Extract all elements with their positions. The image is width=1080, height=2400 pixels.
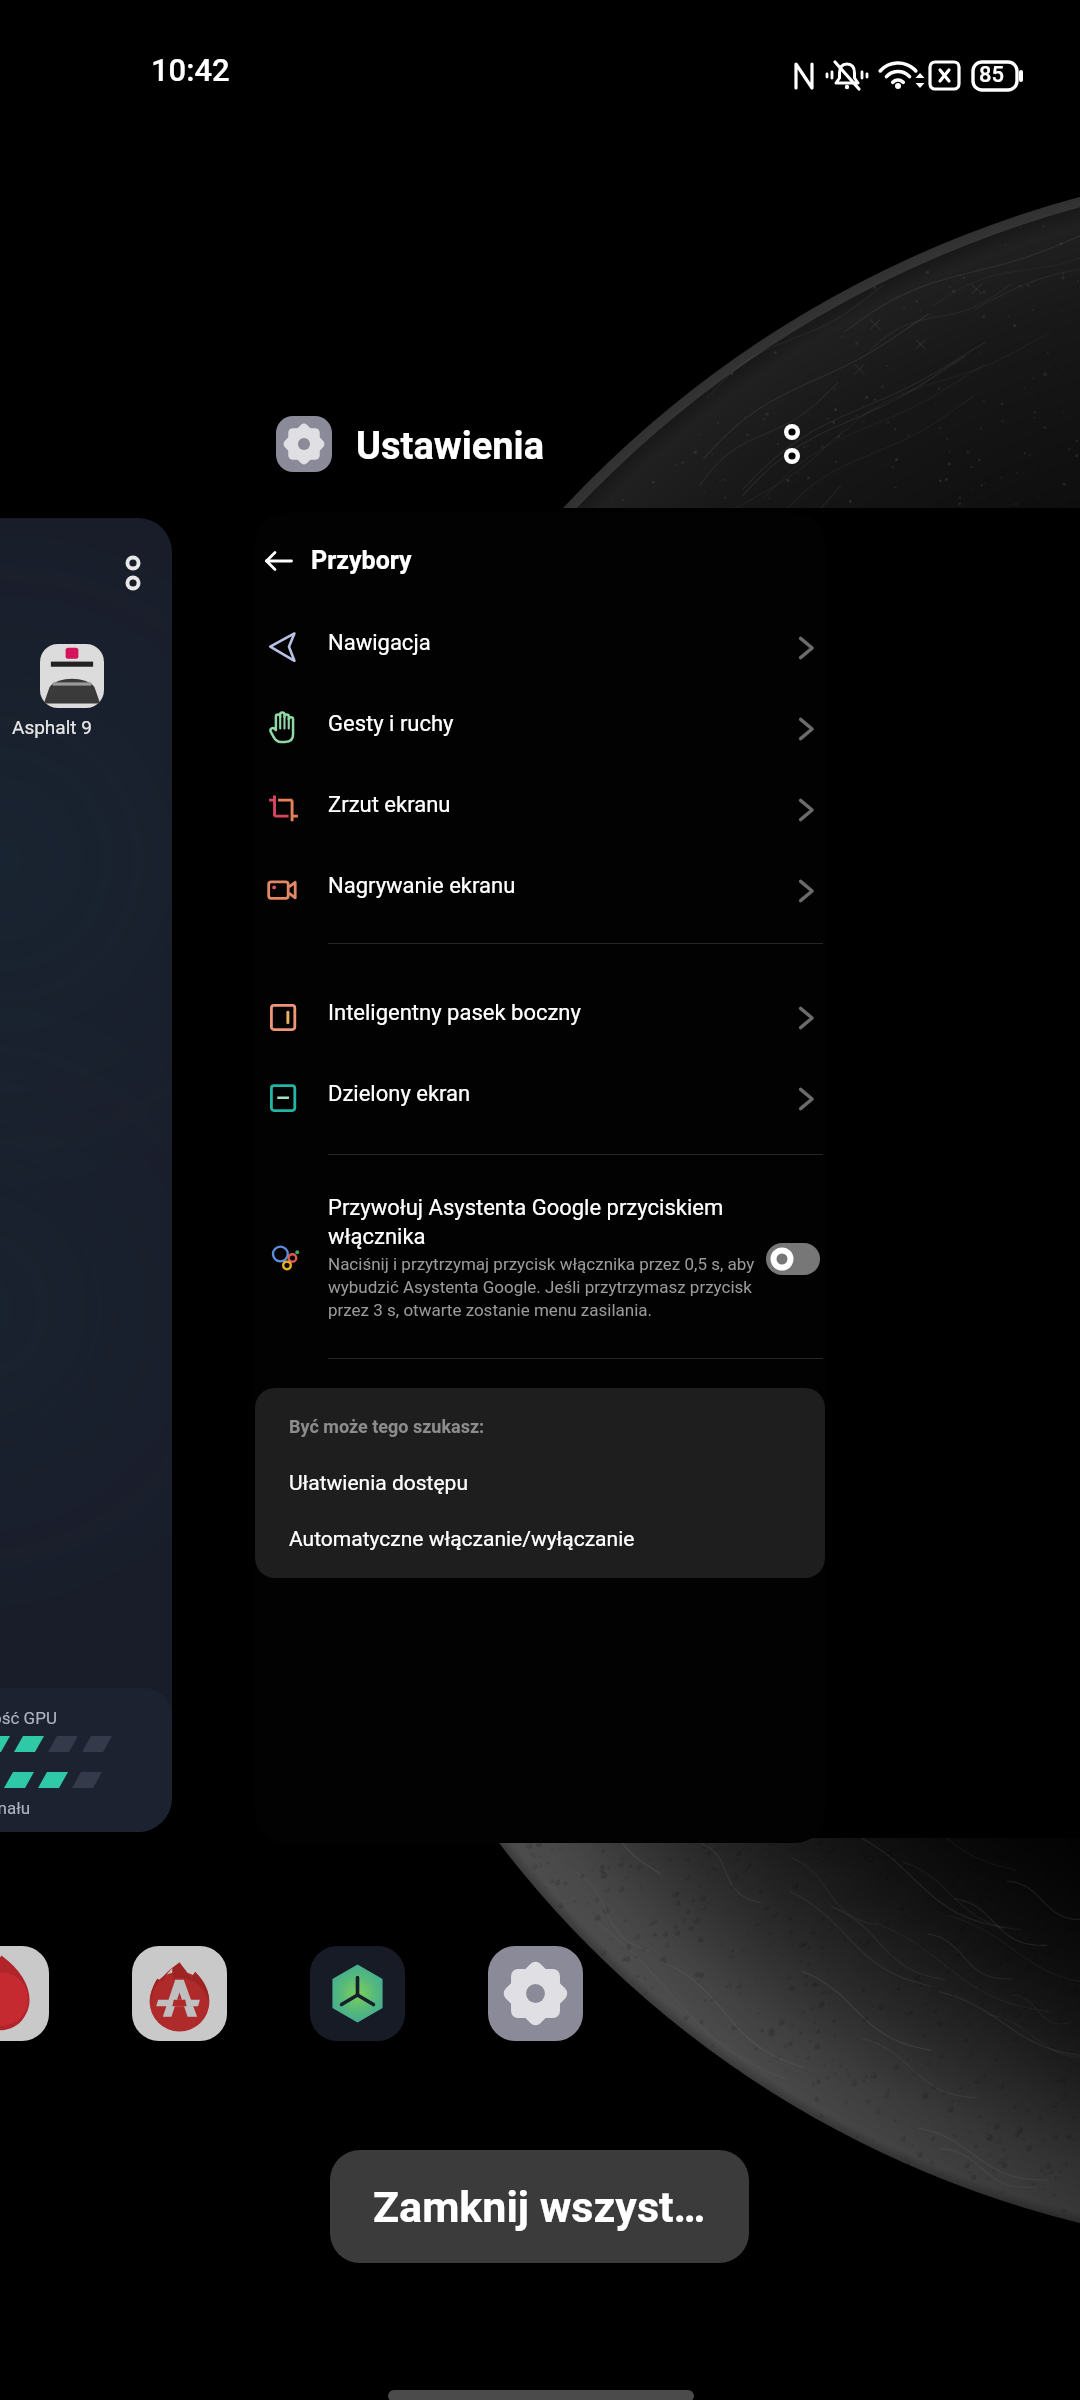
button[interactable]: More options	[764, 416, 820, 472]
button[interactable]: Asphalt 9	[0, 518, 172, 1832]
button[interactable]: Dzielony ekran	[255, 1058, 825, 1139]
button[interactable]: Zamknij wszyst…	[330, 2150, 749, 2263]
button[interactable]: Open app	[0, 1946, 49, 2041]
button[interactable]: Open app	[310, 1946, 405, 2041]
button[interactable]: Gesty i ruchy	[255, 688, 825, 769]
staticText: Zamknij wszyst…	[373, 2182, 706, 2232]
button[interactable]: Nagrywanie ekranu	[255, 850, 825, 931]
button[interactable]: Automatyczne włączanie/wyłączanie	[289, 1527, 635, 1552]
staticText: Przybory	[311, 546, 412, 575]
staticText: ość GPU	[0, 1708, 57, 1728]
staticText: Być może tego szukasz:	[289, 1416, 485, 1437]
staticText: Gesty i ruchy	[328, 711, 454, 737]
staticText: Dzielony ekran	[328, 1081, 471, 1107]
staticText: Inteligentny pasek boczny	[328, 1000, 581, 1026]
staticText: Przywołuj Asystenta Google przyciskiem w…	[328, 1195, 773, 1249]
button[interactable]: Ułatwienia dostępu	[289, 1471, 468, 1496]
button[interactable]: Zrzut ekranu	[255, 769, 825, 850]
staticText: 10:42	[151, 52, 230, 88]
staticText: gnału	[0, 1798, 31, 1818]
button[interactable]: Open app	[488, 1946, 583, 2041]
button[interactable]: Back	[255, 535, 305, 587]
button[interactable]	[766, 1243, 820, 1275]
staticText: Naciśnij i przytrzymaj przycisk włącznik…	[328, 1254, 773, 1320]
staticText: Ustawienia	[356, 424, 545, 469]
button[interactable]: Open app	[132, 1946, 227, 2041]
staticText: Nawigacja	[328, 630, 431, 656]
staticText: 85	[979, 62, 1005, 88]
button[interactable]: Inteligentny pasek boczny	[255, 977, 825, 1058]
staticText: Asphalt 9	[12, 716, 92, 738]
button[interactable]: Nawigacja	[255, 607, 825, 688]
staticText: Zrzut ekranu	[328, 792, 451, 818]
staticText: Nagrywanie ekranu	[328, 873, 516, 899]
button[interactable]: Być może tego szukasz:	[255, 1388, 825, 1578]
